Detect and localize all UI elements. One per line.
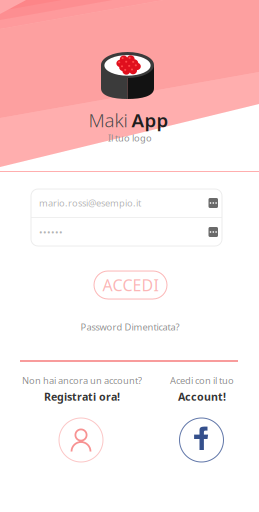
button[interactable]: Password Dimenticata?: [65, 319, 195, 335]
staticText: Non hai ancora un account?: [22, 374, 142, 387]
staticText: App: [131, 108, 168, 132]
button[interactable]: Accedi con Facebook: [179, 418, 223, 462]
staticText: Registrati ora!: [44, 390, 120, 404]
button[interactable]: Email: [31, 189, 222, 217]
staticText: mario.rossi@esempio.it: [39, 197, 141, 209]
staticText: Account!: [178, 390, 226, 404]
staticText: Il tuo logo: [108, 132, 152, 144]
button[interactable]: Password: [31, 218, 222, 246]
staticText: Acedi con il tuo: [170, 374, 234, 387]
button[interactable]: Registrati ora: [59, 418, 103, 462]
staticText: ••••••: [39, 226, 63, 238]
staticText: ACCEDI: [102, 274, 158, 296]
staticText: Password Dimenticata?: [80, 321, 179, 333]
staticText: Maki: [88, 108, 127, 132]
button[interactable]: ACCEDI: [94, 271, 167, 299]
